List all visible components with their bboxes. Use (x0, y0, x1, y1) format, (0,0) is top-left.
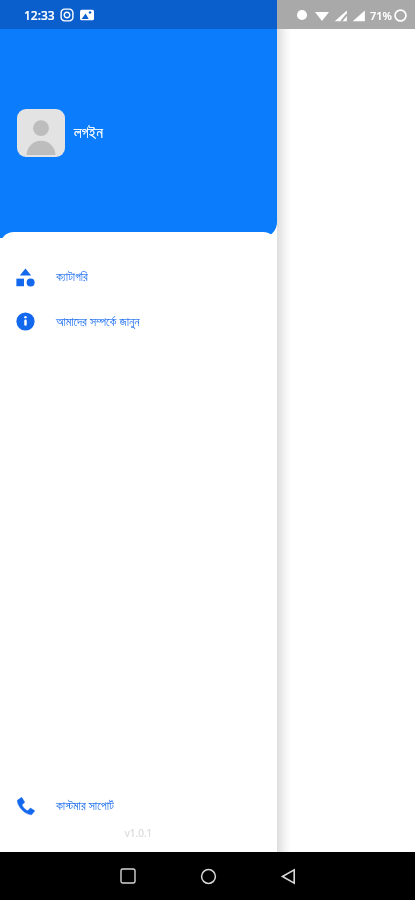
button[interactable]: Home (184, 852, 232, 900)
button[interactable]: Customer support (0, 789, 277, 820)
other: Categories (16, 268, 35, 287)
button[interactable]: Profile photo (0, 105, 277, 161)
staticText: কাস্টমার সাপোর্ট (56, 797, 114, 813)
button[interactable]: Recent apps (104, 852, 152, 900)
staticText: ক্যাটাগরি (56, 271, 88, 283)
staticText: 12:33 (24, 7, 55, 23)
staticText: v1.0.1 (0, 826, 277, 840)
button[interactable]: Categories (0, 261, 277, 292)
staticText: 71% (370, 8, 392, 23)
other: Customer support (16, 796, 35, 815)
button[interactable]: About us (0, 305, 277, 336)
other: Profile photo (17, 109, 65, 157)
button[interactable]: Back (264, 852, 312, 900)
staticText: আমাদের সম্পর্কে জানুন (56, 313, 140, 329)
staticText: লগইন (74, 126, 103, 141)
other: About us (16, 312, 35, 331)
